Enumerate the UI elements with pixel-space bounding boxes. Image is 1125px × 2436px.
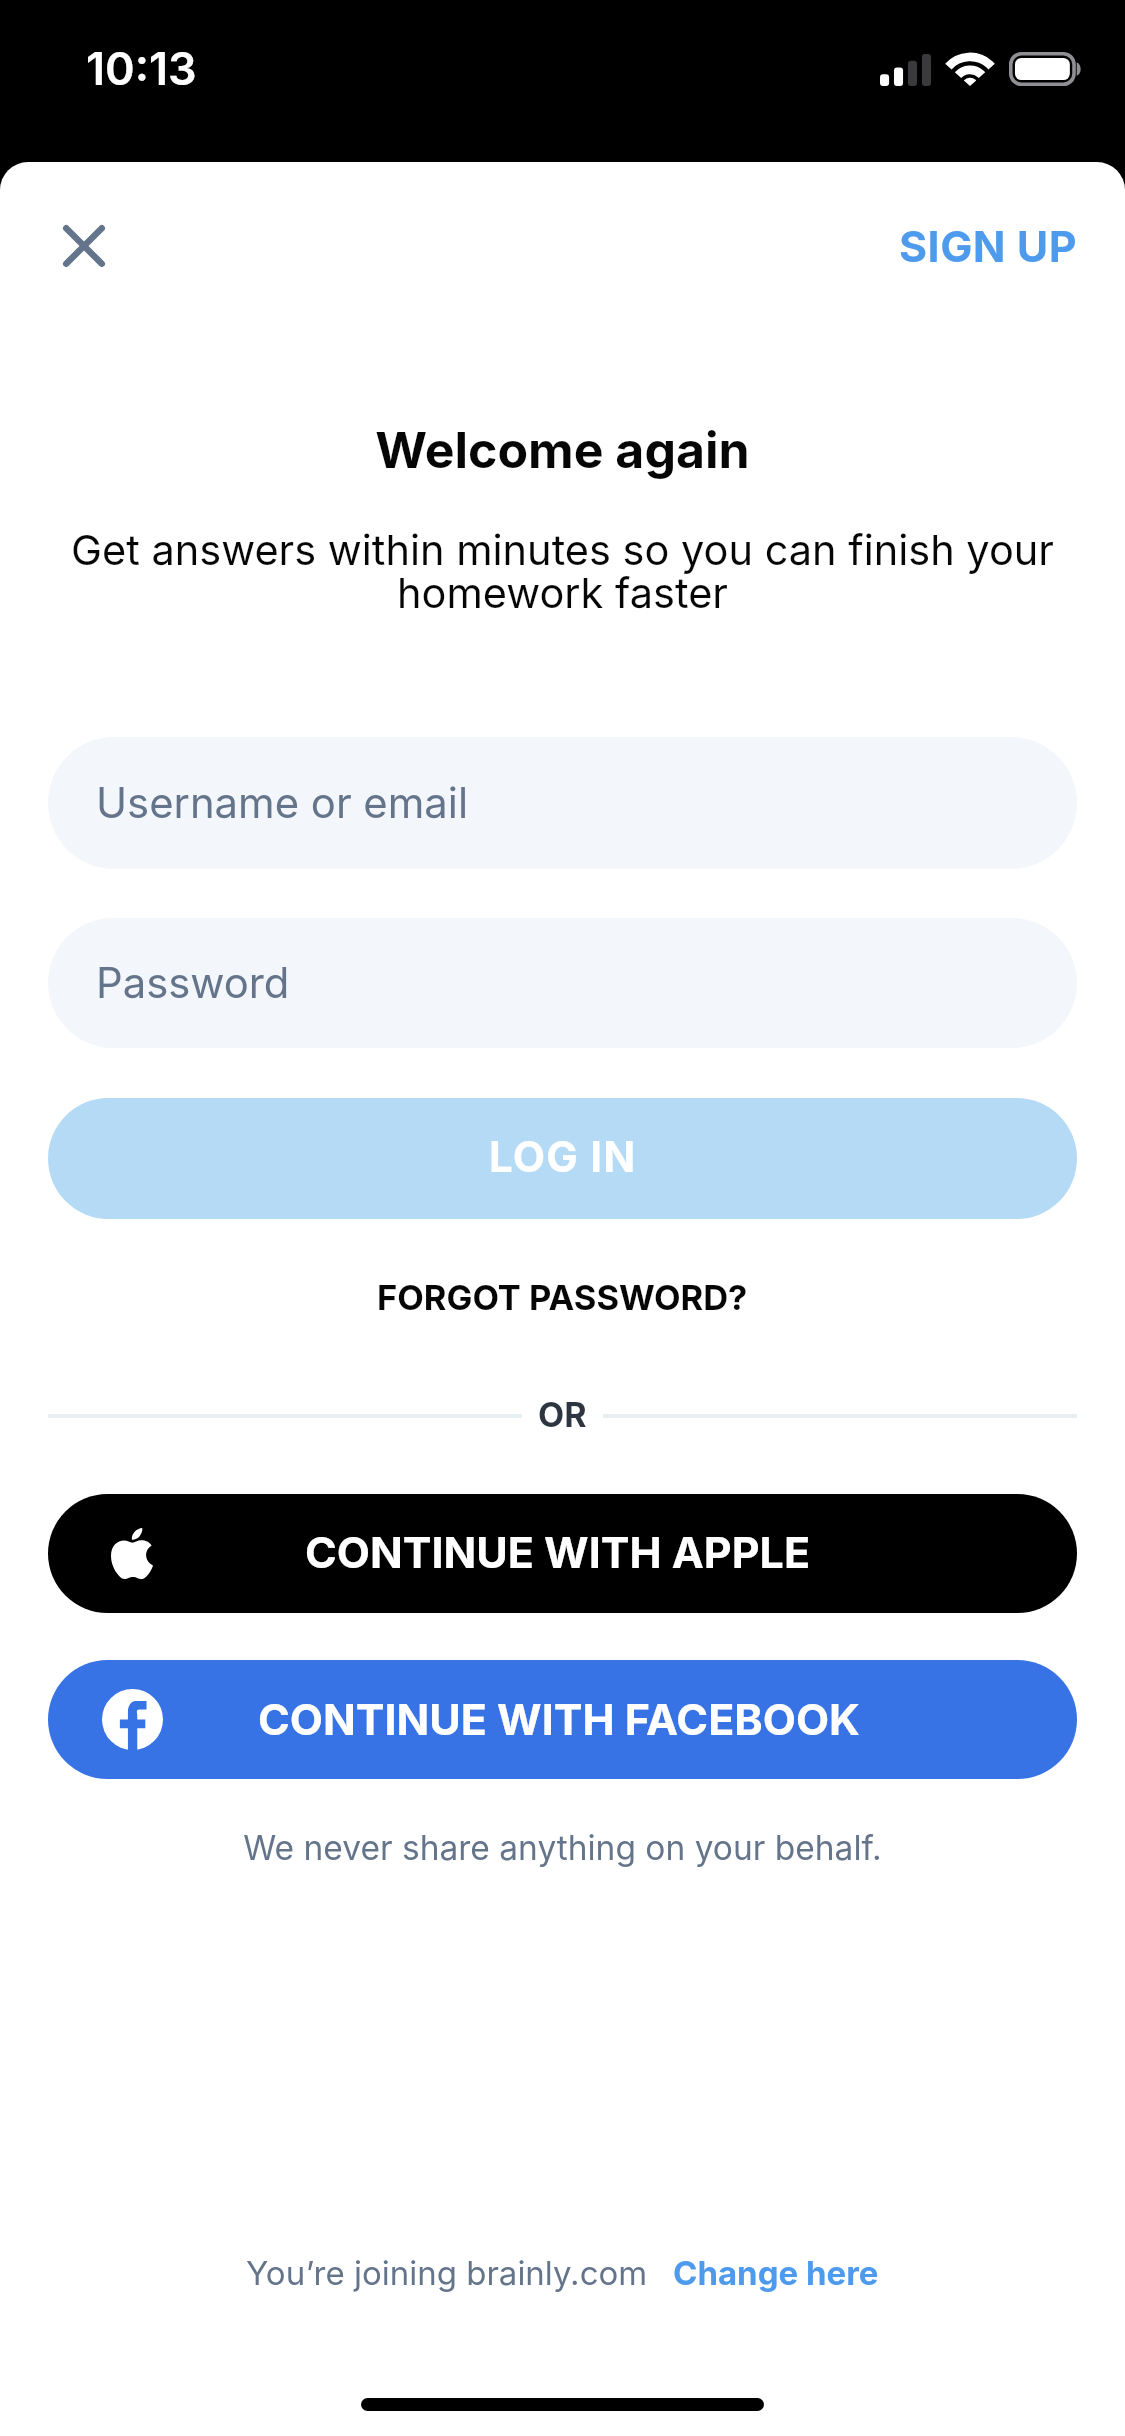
staticText: Welcome again xyxy=(0,420,1125,480)
staticText: SIGN UP xyxy=(899,220,1077,272)
button[interactable]: Change here xyxy=(648,2253,879,2293)
staticText: You’re joining brainly.com xyxy=(246,2253,648,2293)
staticText: FORGOT PASSWORD? xyxy=(377,1277,748,1319)
staticText: Get answers within minutes so you can fi… xyxy=(40,525,1085,618)
button[interactable]: Username or email xyxy=(48,737,1077,869)
button[interactable]: FORGOT PASSWORD? xyxy=(349,1257,776,1339)
staticText: We never share anything on your behalf. xyxy=(0,1828,1125,1869)
button[interactable]: LOG IN xyxy=(48,1098,1077,1219)
button[interactable]: CONTINUE WITH APPLE xyxy=(48,1494,1077,1613)
button[interactable]: Password xyxy=(48,918,1077,1048)
staticText: CONTINUE WITH FACEBOOK xyxy=(258,1693,860,1745)
button[interactable]: SIGN UP xyxy=(869,198,1125,294)
staticText: 10:13 xyxy=(86,41,197,95)
staticText: Password xyxy=(96,958,290,1009)
staticText: OR xyxy=(538,1394,587,1435)
staticText: Username or email xyxy=(96,778,469,829)
staticText: CONTINUE WITH APPLE xyxy=(305,1526,810,1578)
staticText: LOG IN xyxy=(489,1131,637,1182)
staticText: Change here xyxy=(673,2253,879,2293)
button[interactable]: CONTINUE WITH FACEBOOK xyxy=(48,1660,1077,1779)
button[interactable]: Close xyxy=(29,191,139,301)
